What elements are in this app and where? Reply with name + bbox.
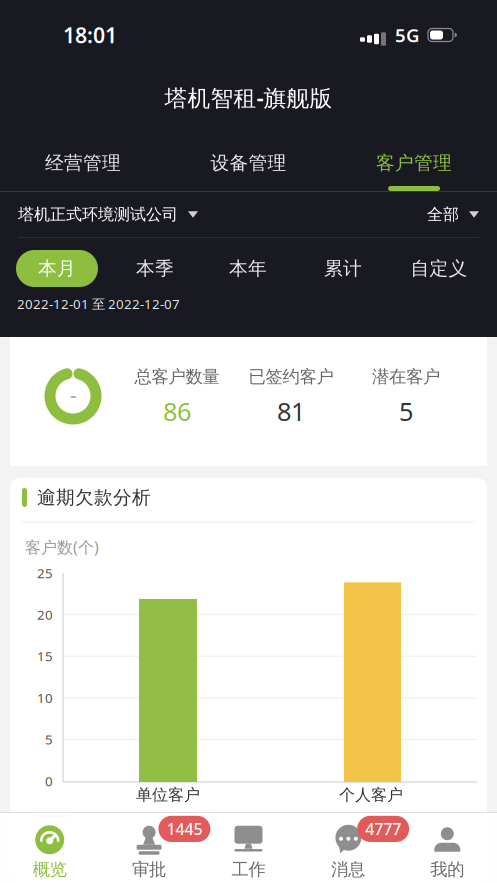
- staticText: 消息: [331, 859, 365, 880]
- staticText: 我的: [430, 859, 464, 880]
- staticText: 设备管理: [210, 151, 286, 174]
- staticText: 工作: [231, 859, 265, 880]
- staticText: 10: [37, 689, 53, 707]
- staticText: 自定义: [410, 257, 467, 280]
- button[interactable]: 审批: [99, 813, 199, 883]
- staticText: 已签约客户: [248, 366, 333, 387]
- button[interactable]: 概览: [0, 813, 99, 883]
- button[interactable]: 客户管理: [331, 135, 497, 191]
- staticText: 20: [37, 606, 53, 623]
- staticText: 25: [37, 564, 53, 582]
- button[interactable]: 消息: [298, 813, 398, 883]
- staticText: 本季: [136, 257, 174, 280]
- button[interactable]: 本月: [16, 250, 98, 287]
- button[interactable]: 设备管理: [166, 135, 331, 191]
- staticText: 客户管理: [376, 151, 452, 174]
- staticText: 2022-12-01 至 2022-12-07: [17, 295, 180, 313]
- staticText: 概览: [33, 859, 67, 880]
- staticText: 塔机智租-旗舰版: [164, 82, 332, 112]
- button[interactable]: 自定义: [399, 250, 479, 287]
- staticText: 本年: [229, 257, 267, 280]
- staticText: 全部: [427, 205, 459, 224]
- button[interactable]: 本年: [213, 250, 283, 287]
- staticText: 累计: [324, 257, 362, 280]
- staticText: 1445: [166, 818, 202, 839]
- staticText: 塔机正式环境测试公司: [18, 205, 178, 224]
- staticText: 逾期欠款分析: [37, 486, 151, 509]
- staticText: -: [70, 382, 76, 408]
- staticText: 5G: [395, 23, 420, 47]
- button[interactable]: 全部: [427, 205, 479, 224]
- button[interactable]: 塔机正式环境测试公司: [18, 205, 198, 224]
- staticText: 审批: [132, 859, 166, 880]
- button[interactable]: 累计: [308, 250, 378, 287]
- button[interactable]: 我的: [398, 813, 497, 883]
- staticText: 单位客户: [136, 785, 200, 805]
- staticText: 总客户数量: [134, 366, 219, 387]
- button[interactable]: 工作: [199, 813, 298, 883]
- button[interactable]: 经营管理: [0, 135, 166, 191]
- staticText: 5: [45, 730, 53, 748]
- staticText: 15: [37, 647, 53, 665]
- staticText: 86: [163, 394, 191, 428]
- button[interactable]: 本季: [120, 250, 190, 287]
- staticText: 4777: [365, 818, 401, 839]
- staticText: 潜在客户: [372, 366, 440, 387]
- staticText: 客户数(个): [25, 536, 99, 558]
- staticText: 18:01: [63, 21, 117, 49]
- staticText: 0: [45, 772, 53, 790]
- staticText: 经营管理: [45, 151, 121, 174]
- staticText: 5: [399, 394, 413, 428]
- staticText: 81: [277, 394, 305, 428]
- staticText: 个人客户: [339, 785, 403, 805]
- staticText: 本月: [38, 257, 76, 280]
